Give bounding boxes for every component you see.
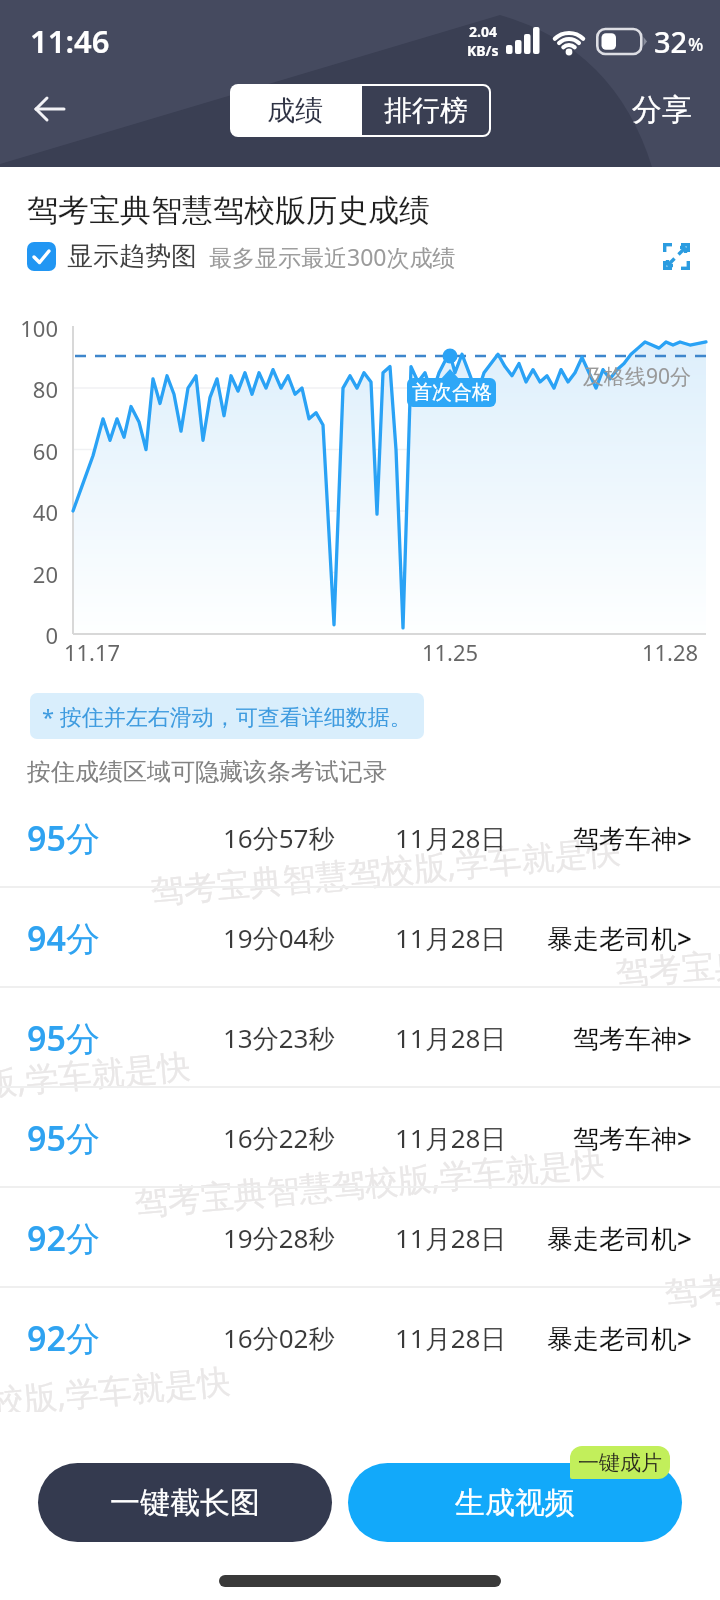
staticText: 驾考宝典智慧驾校版,学车就是快 bbox=[133, 1140, 606, 1225]
staticText: 驾考宝典智慧驾校版,学车就是快 bbox=[614, 910, 720, 995]
staticText: 暴走老司机> bbox=[547, 920, 692, 956]
staticText: 分享 bbox=[632, 91, 692, 129]
staticText: 16分02秒 bbox=[223, 1320, 335, 1356]
staticText: 最多显示最近300次成绩 bbox=[209, 241, 456, 272]
staticText: 首次合格 bbox=[412, 380, 492, 405]
staticText: 暴走老司机> bbox=[547, 1320, 692, 1356]
staticText: 11.25 bbox=[410, 637, 490, 667]
staticText: 11.17 bbox=[52, 637, 132, 667]
staticText: 11月28日 bbox=[395, 920, 507, 956]
staticText: 生成视频 bbox=[455, 1484, 575, 1522]
staticText: 排行榜 bbox=[384, 93, 468, 128]
staticText: 95分 bbox=[27, 1115, 100, 1161]
staticText: 13分23秒 bbox=[223, 1020, 335, 1056]
button[interactable]: 显示趋势图 bbox=[27, 240, 456, 273]
staticText: 20 bbox=[0, 559, 58, 589]
button[interactable]: 95分 bbox=[0, 788, 720, 888]
staticText: 19分28秒 bbox=[223, 1220, 335, 1256]
button[interactable]: 92分 bbox=[0, 1188, 720, 1288]
staticText: 95分 bbox=[27, 815, 100, 861]
button[interactable]: 95分 bbox=[0, 988, 720, 1088]
staticText: * 按住并左右滑动，可查看详细数据。 bbox=[42, 701, 412, 731]
staticText: 显示趋势图 bbox=[67, 240, 197, 273]
staticText: 16分57秒 bbox=[223, 820, 335, 856]
staticText: 及格线90分 bbox=[583, 362, 692, 391]
staticText: % bbox=[688, 32, 704, 57]
staticText: KB/s bbox=[467, 41, 499, 60]
staticText: 95分 bbox=[27, 1015, 100, 1061]
staticText: 11.28 bbox=[630, 637, 710, 667]
staticText: 60 bbox=[0, 436, 58, 466]
staticText: 94分 bbox=[27, 915, 100, 961]
staticText: 11月28日 bbox=[395, 1020, 507, 1056]
staticText: 驾考宝典智慧驾校版,学车就是快 bbox=[0, 1043, 192, 1128]
staticText: 16分22秒 bbox=[223, 1120, 335, 1156]
staticText: 驾考宝典智慧驾校版,学车就是快 bbox=[663, 1230, 720, 1315]
staticText: 一键成片 bbox=[578, 1450, 662, 1476]
button[interactable]: 95分 bbox=[0, 1088, 720, 1188]
staticText: 11月28日 bbox=[395, 820, 507, 856]
staticText: 成绩 bbox=[267, 93, 323, 128]
staticText: 暴走老司机> bbox=[547, 1220, 692, 1256]
button[interactable] bbox=[663, 243, 690, 270]
staticText: 32 bbox=[654, 22, 688, 61]
button[interactable]: 排行榜 bbox=[360, 84, 491, 137]
staticText: 2.04 bbox=[469, 22, 497, 41]
staticText: 92分 bbox=[27, 1315, 100, 1361]
staticText: 一键截长图 bbox=[110, 1484, 260, 1522]
staticText: 驾考宝典智慧驾校版,学车就是快 bbox=[0, 1358, 232, 1443]
button[interactable] bbox=[33, 93, 67, 127]
staticText: 80 bbox=[0, 374, 58, 404]
button[interactable]: 生成视频 bbox=[348, 1463, 682, 1542]
staticText: 驾考车神> bbox=[573, 1120, 692, 1156]
staticText: 0 bbox=[0, 620, 58, 650]
staticText: 按住成绩区域可隐藏该条考试记录 bbox=[27, 757, 387, 787]
staticText: 11:46 bbox=[30, 20, 110, 62]
staticText: 40 bbox=[0, 497, 58, 527]
staticText: 驾考宝典智慧驾校版历史成绩 bbox=[27, 191, 430, 230]
staticText: 驾考车神> bbox=[573, 1020, 692, 1056]
staticText: 驾考车神> bbox=[573, 820, 692, 856]
button[interactable]: 一键截长图 bbox=[38, 1463, 332, 1542]
staticText: 驾考宝典智慧驾校版,学车就是快 bbox=[149, 828, 622, 913]
button[interactable]: 成绩 bbox=[230, 84, 360, 137]
staticText: 11月28日 bbox=[395, 1320, 507, 1356]
staticText: 100 bbox=[0, 313, 58, 343]
staticText: 11月28日 bbox=[395, 1120, 507, 1156]
button[interactable]: 92分 bbox=[0, 1288, 720, 1388]
staticText: 19分04秒 bbox=[223, 920, 335, 956]
staticText: 11月28日 bbox=[395, 1220, 507, 1256]
button[interactable]: 94分 bbox=[0, 888, 720, 988]
button[interactable]: 分享 bbox=[632, 91, 692, 129]
staticText: 92分 bbox=[27, 1215, 100, 1261]
